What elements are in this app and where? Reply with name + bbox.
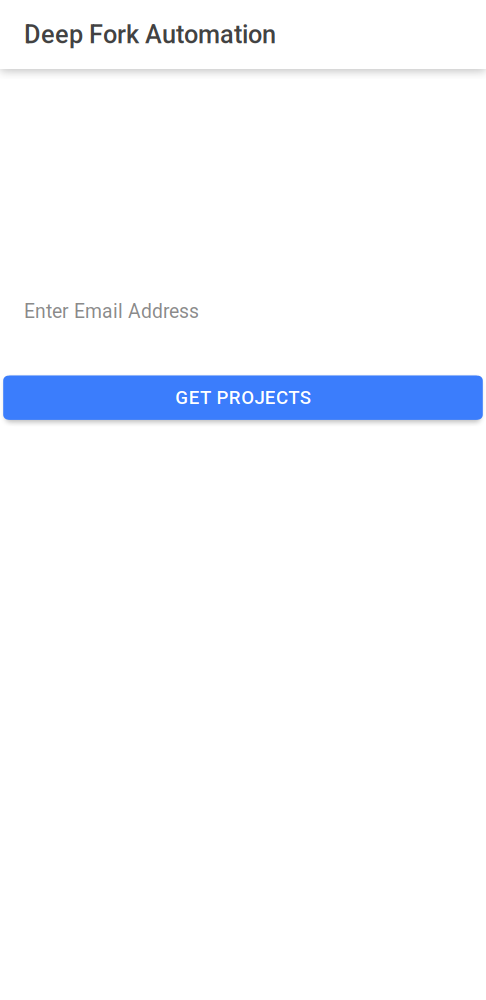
staticText: Deep Fork Automation bbox=[24, 20, 276, 49]
button[interactable]: GET PROJECTS bbox=[3, 376, 483, 420]
staticText: Enter Email Address bbox=[24, 300, 199, 323]
button[interactable]: Enter Email Address bbox=[0, 300, 486, 323]
staticText: GET PROJECTS bbox=[175, 387, 311, 409]
